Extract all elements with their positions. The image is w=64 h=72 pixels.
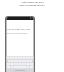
staticText: Type slower for best <box>21 1 44 4</box>
button[interactable]: Keyboard <box>6 56 34 72</box>
staticText: auto-correcting results <box>19 4 45 7</box>
staticText: Nice to meet you, how <box>7 28 30 31</box>
staticText: are you doing today? <box>7 32 28 35</box>
